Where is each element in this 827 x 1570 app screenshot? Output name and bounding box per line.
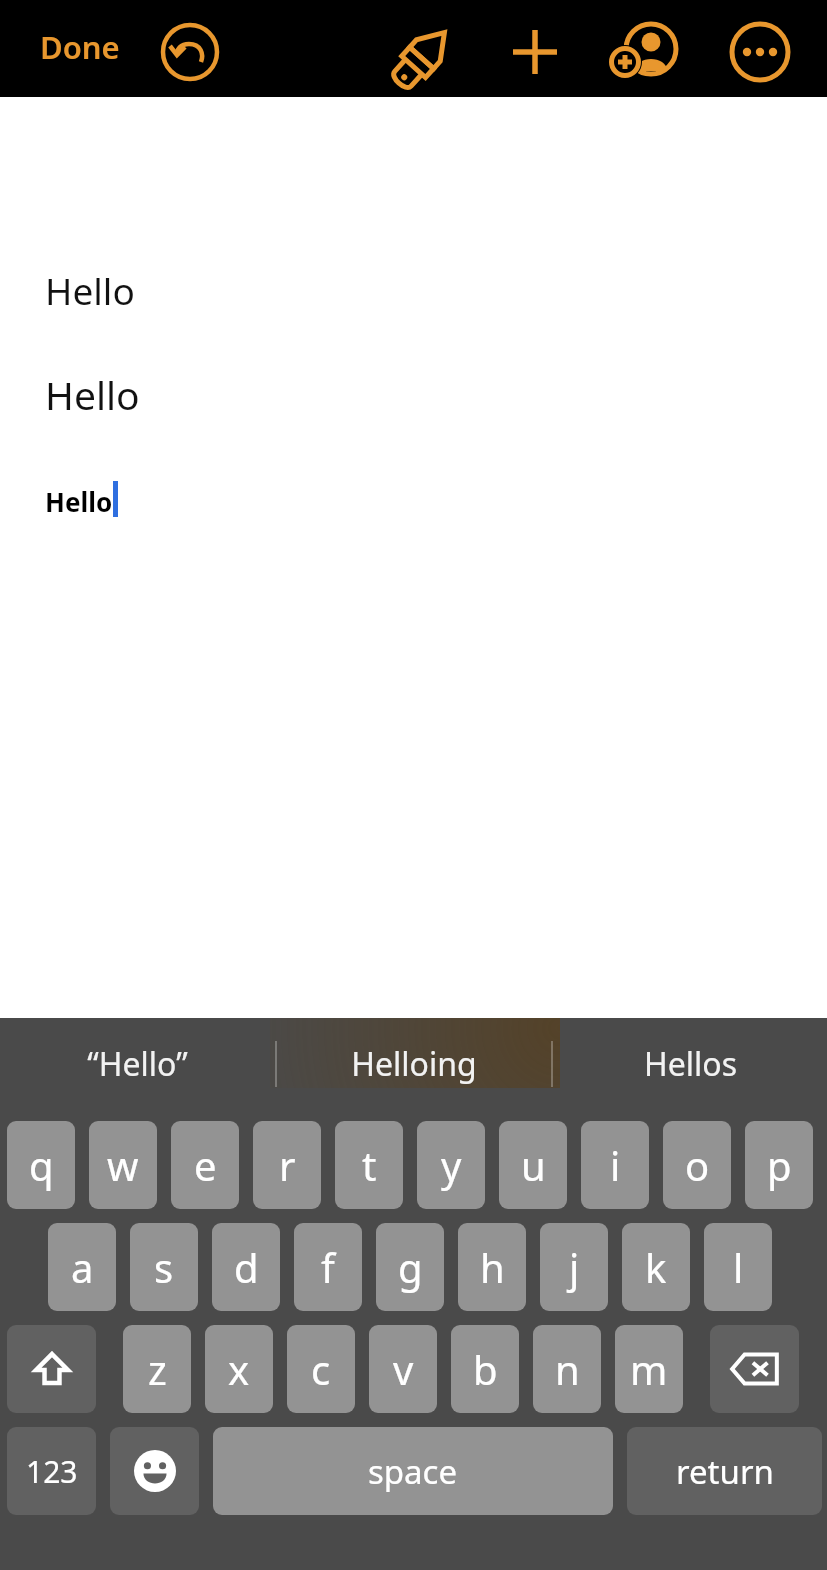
button[interactable]: Helloing — [277, 1018, 551, 1110]
button[interactable]: j — [540, 1223, 608, 1311]
button[interactable]: Add — [505, 22, 565, 82]
staticText: x — [228, 1342, 250, 1396]
staticText: j — [569, 1240, 580, 1294]
staticText: u — [521, 1138, 546, 1192]
button[interactable]: g — [376, 1223, 444, 1311]
staticText: c — [311, 1342, 331, 1396]
staticText: Hellos — [644, 1042, 737, 1086]
staticText: space — [368, 1449, 458, 1494]
button[interactable]: s — [130, 1223, 198, 1311]
button[interactable]: z — [123, 1325, 191, 1413]
button[interactable]: x — [205, 1325, 273, 1413]
staticText: n — [555, 1342, 580, 1396]
staticText: p — [767, 1138, 792, 1192]
staticText: b — [473, 1342, 498, 1396]
staticText: f — [321, 1240, 335, 1294]
button[interactable]: y — [417, 1121, 485, 1209]
staticText: “Hello” — [87, 1042, 188, 1086]
staticText: Done — [40, 26, 120, 68]
staticText: w — [107, 1138, 139, 1192]
staticText: i — [610, 1138, 621, 1192]
staticText: Hello — [45, 368, 140, 421]
button[interactable]: More — [728, 20, 792, 84]
button[interactable]: Done — [36, 24, 124, 70]
staticText: y — [441, 1138, 462, 1192]
button[interactable]: q — [7, 1121, 75, 1209]
button[interactable]: Emoji — [110, 1427, 199, 1515]
staticText: s — [154, 1240, 174, 1294]
button[interactable]: Shift — [7, 1325, 96, 1413]
button[interactable]: “Hello” — [0, 1018, 275, 1110]
button[interactable]: w — [89, 1121, 157, 1209]
button[interactable]: o — [663, 1121, 731, 1209]
button[interactable]: k — [622, 1223, 690, 1311]
button[interactable]: Add People — [612, 20, 676, 84]
staticText: r — [279, 1138, 296, 1192]
staticText: d — [234, 1240, 259, 1294]
staticText: q — [29, 1138, 54, 1192]
staticText: m — [630, 1342, 668, 1396]
button[interactable]: Undo — [160, 22, 220, 82]
staticText: return — [676, 1449, 774, 1494]
button[interactable]: n — [533, 1325, 601, 1413]
button[interactable]: m — [615, 1325, 683, 1413]
staticText: Helloing — [351, 1042, 477, 1086]
button[interactable]: f — [294, 1223, 362, 1311]
staticText: Hello — [45, 265, 135, 315]
button[interactable]: u — [499, 1121, 567, 1209]
button[interactable]: Hellos — [553, 1018, 827, 1110]
button[interactable]: space — [213, 1427, 613, 1515]
button[interactable]: Markup — [395, 20, 459, 84]
staticText: a — [71, 1240, 94, 1294]
staticText: k — [645, 1240, 667, 1294]
button[interactable]: h — [458, 1223, 526, 1311]
button[interactable]: i — [581, 1121, 649, 1209]
button[interactable]: d — [212, 1223, 280, 1311]
button[interactable]: return — [627, 1427, 822, 1515]
staticText: h — [480, 1240, 505, 1294]
staticText: 123 — [26, 1451, 78, 1492]
staticText: o — [685, 1138, 710, 1192]
button[interactable]: v — [369, 1325, 437, 1413]
staticText: e — [194, 1138, 217, 1192]
staticText: g — [398, 1240, 423, 1294]
button[interactable]: l — [704, 1223, 772, 1311]
staticText: Hello — [45, 484, 113, 519]
button[interactable]: r — [253, 1121, 321, 1209]
staticText: l — [733, 1240, 744, 1294]
staticText: t — [362, 1138, 377, 1192]
staticText: v — [393, 1342, 414, 1396]
button[interactable]: c — [287, 1325, 355, 1413]
button[interactable]: Backspace — [710, 1325, 799, 1413]
button[interactable]: t — [335, 1121, 403, 1209]
button[interactable]: p — [745, 1121, 813, 1209]
button[interactable]: b — [451, 1325, 519, 1413]
button[interactable]: e — [171, 1121, 239, 1209]
staticText: z — [148, 1342, 167, 1396]
button[interactable]: 123 — [7, 1427, 96, 1515]
button[interactable]: a — [48, 1223, 116, 1311]
